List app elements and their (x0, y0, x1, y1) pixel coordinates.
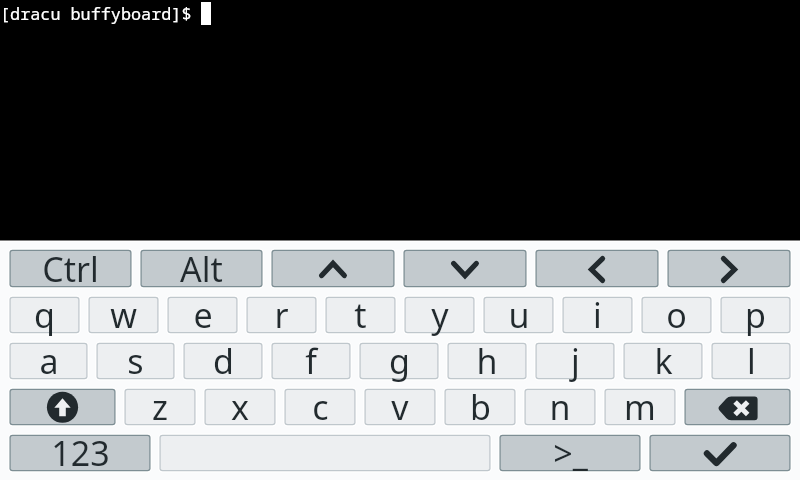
staticText (321, 430, 330, 476)
button[interactable]: l (707, 338, 795, 384)
staticText: j (571, 338, 580, 384)
button[interactable]: u (479, 292, 558, 338)
button[interactable]: Shift (5, 384, 120, 430)
staticText: i (593, 292, 602, 338)
button[interactable]: t (321, 292, 400, 338)
staticText: l (747, 338, 756, 384)
staticText: q (34, 292, 55, 338)
staticText: h (476, 338, 498, 384)
staticText: Alt (180, 246, 223, 292)
button[interactable]: b (440, 384, 520, 430)
button[interactable]: g (355, 338, 443, 384)
staticText: a (39, 338, 59, 384)
staticText: b (470, 384, 491, 430)
button[interactable]: Left (531, 245, 663, 292)
button[interactable]: j (531, 338, 619, 384)
button[interactable]: f (267, 338, 355, 384)
button[interactable]: y (400, 292, 479, 338)
button[interactable]: Backspace (680, 384, 795, 430)
staticText: f (305, 338, 317, 384)
staticText: m (624, 384, 656, 430)
staticText: Ctrl (42, 246, 99, 292)
staticText: x (231, 384, 249, 430)
button[interactable]: c (280, 384, 360, 430)
button[interactable] (155, 430, 495, 476)
staticText: s (127, 338, 144, 384)
staticText: r (274, 292, 289, 338)
staticText: g (389, 338, 410, 384)
button[interactable]: d (179, 338, 267, 384)
button[interactable]: v (360, 384, 440, 430)
staticText: [dracu buffyboard]$ (0, 2, 202, 25)
button[interactable]: Ctrl (5, 245, 136, 292)
staticText: o (666, 292, 687, 338)
button[interactable]: i (558, 292, 637, 338)
button[interactable]: h (443, 338, 531, 384)
staticText: t (354, 292, 367, 338)
button[interactable]: Enter (645, 430, 795, 476)
staticText: n (549, 384, 571, 430)
staticText: e (193, 292, 213, 338)
staticText: y (431, 292, 449, 338)
staticText: w (110, 292, 137, 338)
staticText: d (213, 338, 234, 384)
button[interactable]: p (716, 292, 795, 338)
button[interactable]: o (637, 292, 716, 338)
button[interactable]: Up (267, 245, 399, 292)
staticText: v (391, 384, 409, 430)
button[interactable]: k (619, 338, 707, 384)
button[interactable]: m (600, 384, 680, 430)
button[interactable]: 123 (5, 430, 155, 476)
button[interactable]: x (200, 384, 280, 430)
button[interactable]: Down (399, 245, 531, 292)
button[interactable]: Alt (136, 245, 267, 292)
button[interactable]: e (163, 292, 242, 338)
button[interactable]: w (84, 292, 163, 338)
button[interactable]: >_ (495, 430, 645, 476)
button[interactable]: r (242, 292, 321, 338)
button[interactable]: s (92, 338, 179, 384)
button[interactable]: n (520, 384, 600, 430)
staticText: z (152, 384, 168, 430)
button[interactable]: Right (663, 245, 795, 292)
staticText: u (508, 292, 530, 338)
staticText: 123 (51, 430, 110, 476)
button[interactable]: z (120, 384, 200, 430)
staticText: p (745, 292, 766, 338)
staticText: k (654, 338, 673, 384)
staticText: c (312, 384, 329, 430)
staticText: >_ (553, 430, 588, 476)
button[interactable]: a (5, 338, 92, 384)
button[interactable]: q (5, 292, 84, 338)
